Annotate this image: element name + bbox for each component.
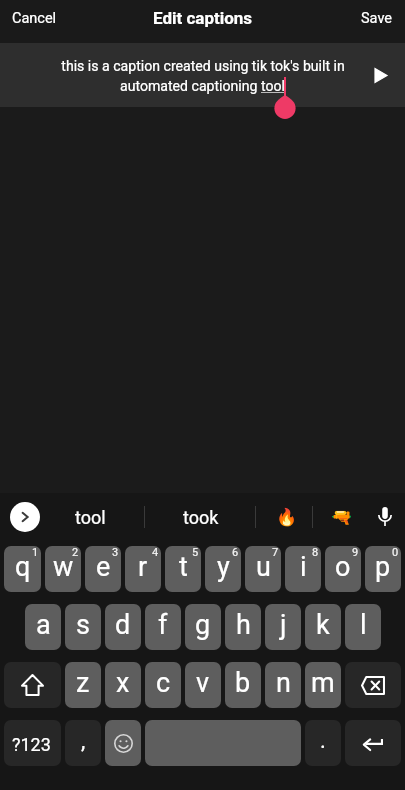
staticText: ?123 — [12, 734, 51, 755]
staticText: f — [158, 609, 168, 641]
button[interactable]: p — [365, 546, 401, 592]
button[interactable]: z — [65, 662, 101, 708]
staticText: c — [156, 667, 171, 699]
button[interactable]: j — [265, 604, 301, 650]
button[interactable]: c — [145, 662, 181, 708]
staticText: u — [256, 551, 271, 583]
staticText: i — [300, 551, 307, 583]
staticText: r — [138, 551, 148, 583]
staticText: Cancel — [12, 10, 57, 27]
staticText: m — [311, 667, 335, 699]
staticText: Edit captions — [153, 8, 253, 28]
button[interactable]: s — [65, 604, 101, 650]
button[interactable]: e — [85, 546, 121, 592]
button[interactable]: m — [305, 662, 341, 708]
staticText: v — [196, 667, 210, 699]
button[interactable]: Backspace — [345, 662, 401, 708]
button[interactable]: y — [205, 546, 241, 592]
staticText: h — [236, 609, 251, 641]
button[interactable]: ?123 — [4, 720, 61, 766]
staticText: automated captioning — [120, 78, 261, 95]
staticText: n — [276, 667, 291, 699]
button[interactable]: . — [305, 720, 341, 766]
staticText: x — [116, 667, 130, 699]
staticText: 0 — [392, 546, 399, 559]
staticText: d — [115, 609, 131, 641]
button[interactable]: k — [305, 604, 341, 650]
button[interactable]: d — [105, 604, 141, 650]
button[interactable]: f — [145, 604, 181, 650]
button[interactable]: v — [185, 662, 221, 708]
staticText: w — [53, 551, 74, 583]
button[interactable]: Play — [365, 59, 397, 91]
staticText: o — [335, 551, 351, 583]
button[interactable]: x — [105, 662, 141, 708]
staticText: 🔫 — [331, 507, 353, 527]
button[interactable]: Cancel — [0, 0, 69, 43]
staticText: Save — [361, 10, 393, 27]
button[interactable]: took — [158, 493, 244, 541]
button[interactable]: a — [25, 604, 61, 650]
button[interactable]: w — [45, 546, 81, 592]
staticText: 6 — [232, 546, 239, 559]
button[interactable]: Save — [349, 0, 405, 43]
staticText: 3 — [112, 546, 119, 559]
staticText: a — [36, 609, 51, 641]
button[interactable]: i — [285, 546, 321, 592]
button[interactable]: Voice input — [361, 493, 405, 541]
button[interactable]: Shift — [4, 662, 61, 708]
button[interactable]: r — [125, 546, 161, 592]
staticText: s — [76, 609, 90, 641]
button[interactable]: t — [165, 546, 201, 592]
staticText: b — [235, 667, 251, 699]
staticText: took — [183, 507, 219, 528]
staticText: 8 — [312, 546, 319, 559]
staticText: this is a caption created using tik tok'… — [61, 58, 345, 75]
button[interactable]: Expand suggestions — [10, 502, 40, 532]
staticText: tool — [75, 507, 106, 528]
button[interactable]: , — [65, 720, 101, 766]
button[interactable]: Emoji — [105, 720, 141, 766]
staticText: 9 — [352, 546, 359, 559]
button[interactable]: Water gun emoji — [318, 493, 366, 541]
staticText: 5 — [192, 546, 199, 559]
button[interactable] — [145, 720, 301, 766]
button[interactable]: h — [225, 604, 261, 650]
button[interactable]: n — [265, 662, 301, 708]
staticText: g — [195, 609, 211, 641]
staticText: t — [179, 551, 188, 583]
staticText: q — [15, 551, 31, 583]
staticText: e — [96, 551, 111, 583]
staticText: p — [375, 551, 391, 583]
button[interactable]: Fire emoji — [263, 493, 311, 541]
button[interactable]: l — [345, 604, 381, 650]
button[interactable]: g — [185, 604, 221, 650]
staticText: 4 — [152, 546, 159, 559]
button[interactable]: q — [4, 546, 41, 592]
staticText: 1 — [32, 546, 39, 559]
staticText: j — [280, 609, 287, 641]
button[interactable]: tool — [48, 493, 133, 541]
staticText: , — [81, 728, 86, 754]
staticText: l — [360, 609, 367, 641]
staticText: 7 — [272, 546, 279, 559]
staticText: 🔥 — [276, 507, 298, 527]
staticText: k — [316, 609, 330, 641]
staticText: . — [320, 728, 326, 754]
button[interactable]: Enter — [345, 720, 401, 766]
staticText: y — [217, 551, 230, 583]
button[interactable]: u — [245, 546, 281, 592]
staticText: z — [76, 667, 90, 699]
staticText: 2 — [72, 546, 79, 559]
button[interactable]: b — [225, 662, 261, 708]
button[interactable]: o — [325, 546, 361, 592]
staticText: tool — [261, 78, 285, 95]
